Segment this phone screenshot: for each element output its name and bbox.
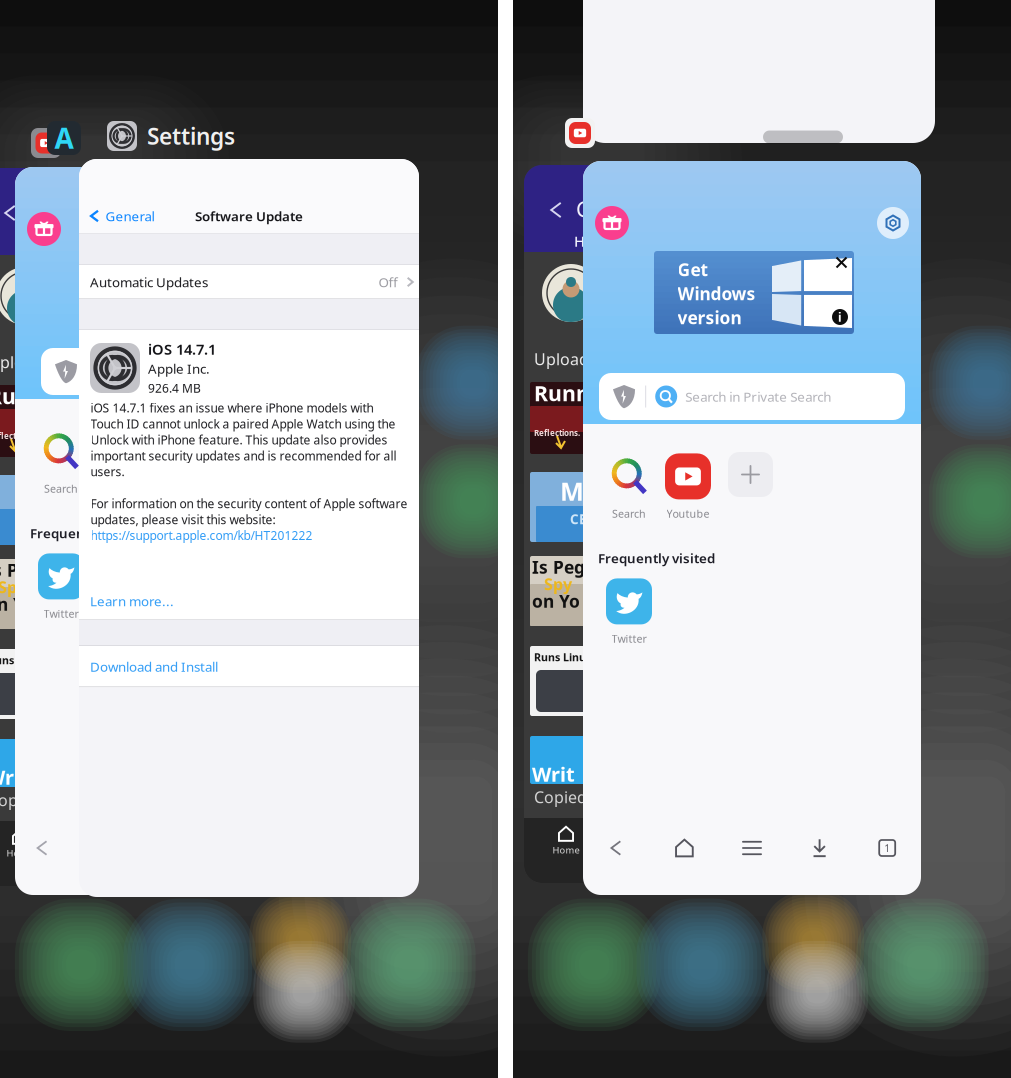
staticText: 1	[884, 841, 890, 855]
staticText: General	[105, 207, 154, 225]
staticText: Home	[6, 847, 33, 859]
staticText: Twitter	[611, 631, 646, 646]
button[interactable]: Youtube	[83, 427, 157, 497]
staticText: Is Peg	[0, 558, 39, 581]
staticText: Runn	[0, 382, 44, 410]
staticText: Search	[612, 506, 646, 521]
button[interactable]: Menu	[718, 819, 786, 877]
staticText: Uploads	[534, 348, 597, 370]
staticText: A	[586, 399, 604, 427]
staticText: Spy	[0, 576, 26, 598]
staticText: For information on the security content …	[90, 496, 407, 527]
staticText: HOM	[28, 234, 63, 254]
staticText: on Yo	[532, 589, 580, 612]
button[interactable]: Download and Install	[79, 646, 419, 687]
staticText: Windows	[677, 282, 755, 305]
button[interactable]: Add shortcut	[728, 452, 773, 497]
staticText: Runs Linu	[534, 650, 586, 664]
button[interactable]: Twitter	[24, 552, 98, 622]
button[interactable]: Twitter	[592, 577, 666, 647]
staticText: Youtube	[666, 506, 709, 521]
button[interactable]: Settings	[877, 207, 909, 239]
button[interactable]: Close ad	[835, 256, 848, 269]
button[interactable]: Tabs	[853, 819, 921, 877]
button[interactable]: Back	[583, 819, 651, 877]
staticText: M	[560, 474, 584, 508]
staticText: i	[838, 309, 842, 325]
staticText: version	[677, 306, 741, 329]
staticText: HOM	[574, 231, 609, 251]
staticText: A	[54, 119, 73, 157]
staticText: Runs Linu	[0, 653, 40, 667]
staticText: Spy	[544, 573, 572, 595]
staticText: Settings	[147, 121, 235, 151]
staticText: Is Peg	[532, 555, 585, 578]
staticText: Writ	[532, 761, 575, 787]
staticText: iOS 14.7.1 fixes an issue where iPhone m…	[90, 400, 396, 480]
staticText: Search in Private Search	[127, 363, 273, 380]
button[interactable]: General	[89, 206, 199, 226]
button[interactable]: Home	[651, 819, 718, 877]
staticText: Reflections.	[0, 431, 34, 441]
button[interactable]: Search	[24, 427, 98, 497]
staticText: Software Update	[195, 207, 303, 225]
staticText: Search	[44, 481, 78, 496]
button[interactable]: Rewards	[595, 206, 629, 240]
staticText: CE	[570, 510, 586, 528]
staticText: Twitter	[43, 606, 78, 621]
button[interactable]: Learn more...	[79, 582, 419, 620]
staticText: Frequently visited	[598, 549, 715, 567]
staticText: Frequently visited	[30, 524, 147, 542]
staticText: 926.4 MB	[148, 380, 201, 396]
staticText: https://support.apple.com/kb/HT201222	[90, 527, 312, 543]
button[interactable]: Add shortcut	[160, 427, 205, 472]
staticText: Runn	[534, 379, 590, 407]
staticText: Ga	[30, 198, 58, 226]
staticText: Reflections.	[534, 428, 580, 438]
staticText: iOS 14.7.1	[148, 339, 216, 359]
staticText: Writ	[0, 764, 29, 790]
staticText: Copied	[0, 789, 41, 811]
button[interactable]: Youtube	[651, 452, 725, 522]
staticText: Off	[378, 273, 397, 291]
staticText: Download and Install	[90, 658, 218, 675]
button[interactable]: Automatic Updates	[79, 265, 419, 299]
staticText: Uploads	[0, 351, 51, 373]
staticText: M	[14, 477, 38, 511]
staticText: Automatic Updates	[90, 273, 208, 291]
staticText: Get	[677, 258, 708, 281]
staticText: Home	[552, 844, 579, 856]
staticText: Apple Inc.	[148, 360, 210, 377]
staticText: on Yo	[0, 592, 34, 615]
staticText: Learn more...	[90, 592, 174, 610]
button[interactable]: Search	[592, 452, 666, 522]
staticText: Copied	[534, 786, 587, 808]
staticText: Search in Private Search	[685, 388, 831, 405]
button[interactable]: Downloads	[786, 819, 853, 877]
button[interactable]: Rewards	[27, 212, 61, 246]
staticText: Ga	[576, 195, 604, 223]
staticText: CE	[24, 513, 40, 531]
